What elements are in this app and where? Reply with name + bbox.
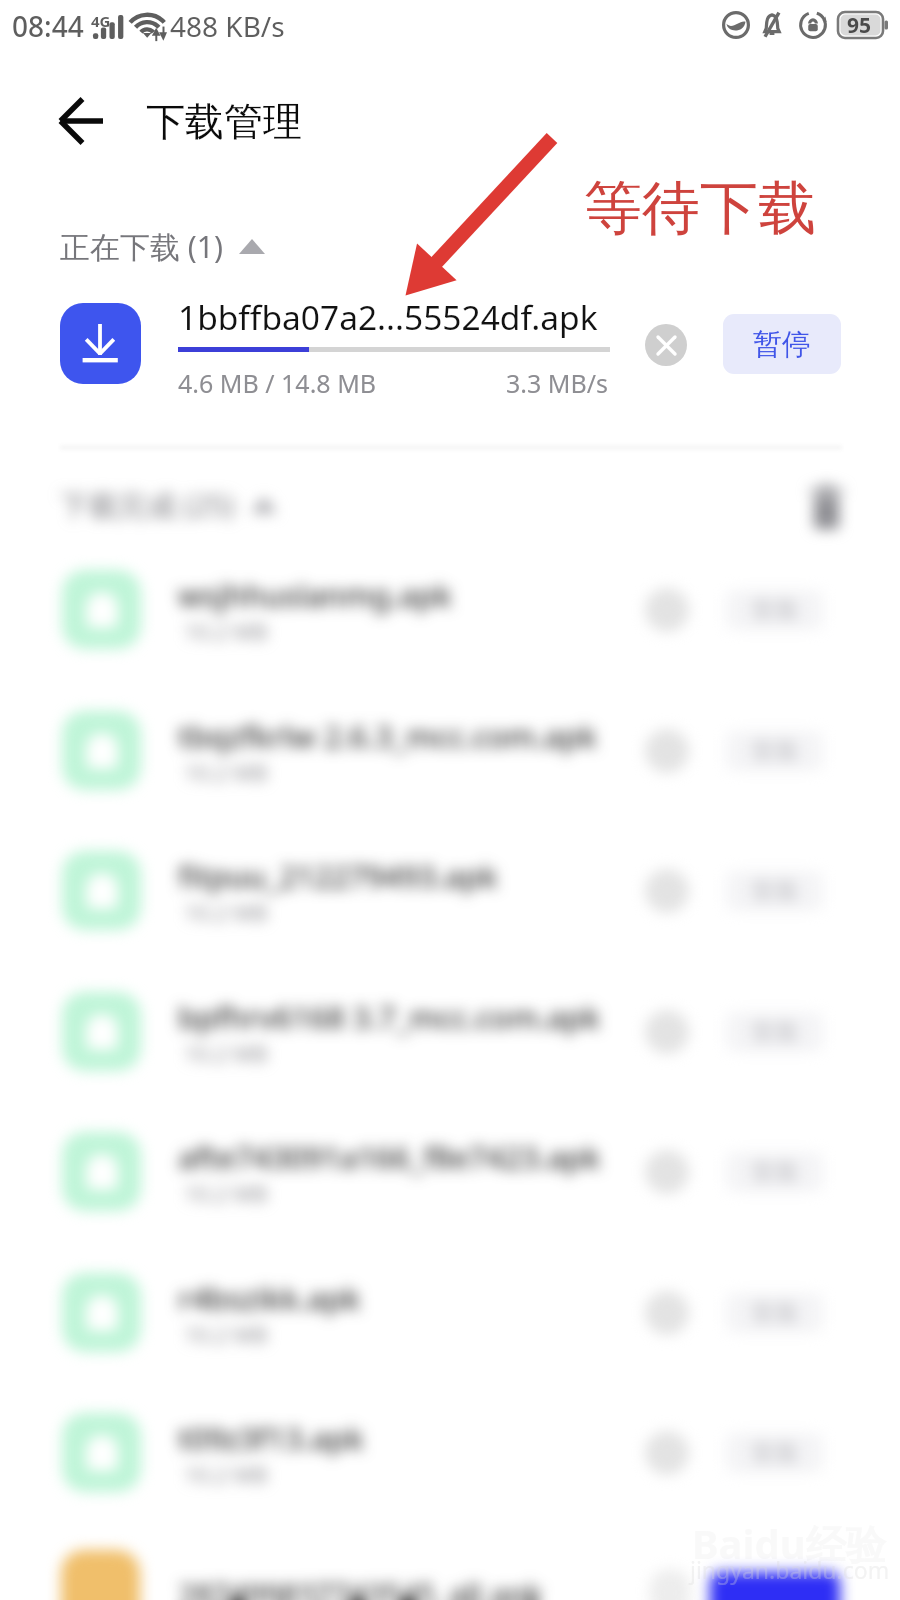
- button[interactable]: More: [645, 1150, 689, 1194]
- staticText: 4G: [91, 11, 111, 31]
- button[interactable]: afte743091a166_f8e7423.apk: [0, 1102, 900, 1242]
- button[interactable]: 安装: [726, 1433, 823, 1473]
- staticText: 10.2 MB: [184, 616, 268, 646]
- staticText: 10.2 MB: [184, 1178, 268, 1208]
- staticText: 安装: [751, 1017, 799, 1047]
- button[interactable]: r4bszikk.apk: [0, 1243, 900, 1383]
- button[interactable]: 安装: [726, 731, 823, 771]
- staticText: 10.2 MB: [184, 897, 268, 927]
- staticText: fitpuu_212279493.apk: [178, 855, 498, 897]
- staticText: wsjhhuslanmg.apk: [178, 574, 453, 616]
- button[interactable]: fitpuu_212279493.apk: [0, 821, 900, 961]
- button[interactable]: t09z3f13.apk: [0, 1383, 900, 1523]
- staticText: 下载管理: [146, 97, 302, 146]
- staticText: 1bbffba07a2...55524df.apk: [178, 294, 598, 340]
- button[interactable]: More: [645, 588, 689, 632]
- staticText: 10.2 MB: [184, 757, 268, 787]
- staticText: 08:44: [12, 7, 84, 45]
- staticText: jingyan.baidu.com: [690, 1554, 890, 1585]
- button[interactable]: wsjhhuslanmg.apk: [0, 540, 900, 680]
- staticText: 10.2 MB: [184, 1319, 268, 1349]
- button[interactable]: More: [645, 869, 689, 913]
- staticText: 安装: [751, 1438, 799, 1468]
- staticText: tbqzfkrlw 2.6.3_mcc.com.apk: [178, 715, 598, 757]
- staticText: 安装: [751, 595, 799, 625]
- staticText: 安装: [751, 736, 799, 766]
- staticText: 3.3 MB/s: [506, 366, 609, 400]
- button[interactable]: 安装: [726, 871, 823, 911]
- staticText: t09z3f13.apk: [178, 1417, 365, 1459]
- staticText: 488 KB/s: [170, 7, 285, 45]
- button[interactable]: Download: [60, 303, 141, 384]
- button[interactable]: 安装: [726, 1012, 823, 1052]
- staticText: 10.2 MB: [184, 1459, 268, 1489]
- staticText: bpfhrv6168 3.7_mcc.com.apk: [178, 996, 601, 1038]
- button[interactable]: 正在下载 (1): [60, 222, 265, 270]
- button[interactable]: More: [645, 1431, 689, 1475]
- button[interactable]: Back: [46, 88, 116, 154]
- button[interactable]: 安装: [726, 1293, 823, 1333]
- staticText: r4bszikk.apk: [178, 1277, 361, 1319]
- button[interactable]: More: [645, 1010, 689, 1054]
- staticText: Baidu经验: [692, 1516, 886, 1571]
- button[interactable]: Delete all: [810, 485, 843, 531]
- button[interactable]: 安装: [726, 1152, 823, 1192]
- staticText: 下载完成 (25): [60, 485, 235, 525]
- staticText: 等待下载: [584, 172, 816, 245]
- staticText: 287499837743545_all.apk: [178, 1574, 543, 1600]
- button[interactable]: 安装: [726, 590, 823, 630]
- button[interactable]: More: [645, 1291, 689, 1335]
- staticText: 4.6 MB / 14.8 MB: [178, 366, 377, 400]
- button[interactable]: Cancel download: [645, 324, 687, 366]
- staticText: 暂停: [753, 326, 811, 363]
- staticText: 正在下载 (1): [60, 226, 223, 267]
- staticText: 10.2 MB: [184, 1038, 268, 1068]
- button[interactable]: More: [645, 729, 689, 773]
- staticText: afte743091a166_f8e7423.apk: [178, 1136, 601, 1178]
- staticText: 安装: [751, 1157, 799, 1187]
- button[interactable]: 下载完成 (25): [60, 482, 277, 528]
- button[interactable]: tbqzfkrlw 2.6.3_mcc.com.apk: [0, 681, 900, 821]
- button[interactable]: bpfhrv6168 3.7_mcc.com.apk: [0, 962, 900, 1102]
- staticText: 安装: [751, 876, 799, 906]
- staticText: 95: [847, 11, 872, 37]
- button[interactable]: 暂停: [723, 314, 841, 374]
- staticText: 安装: [751, 1298, 799, 1328]
